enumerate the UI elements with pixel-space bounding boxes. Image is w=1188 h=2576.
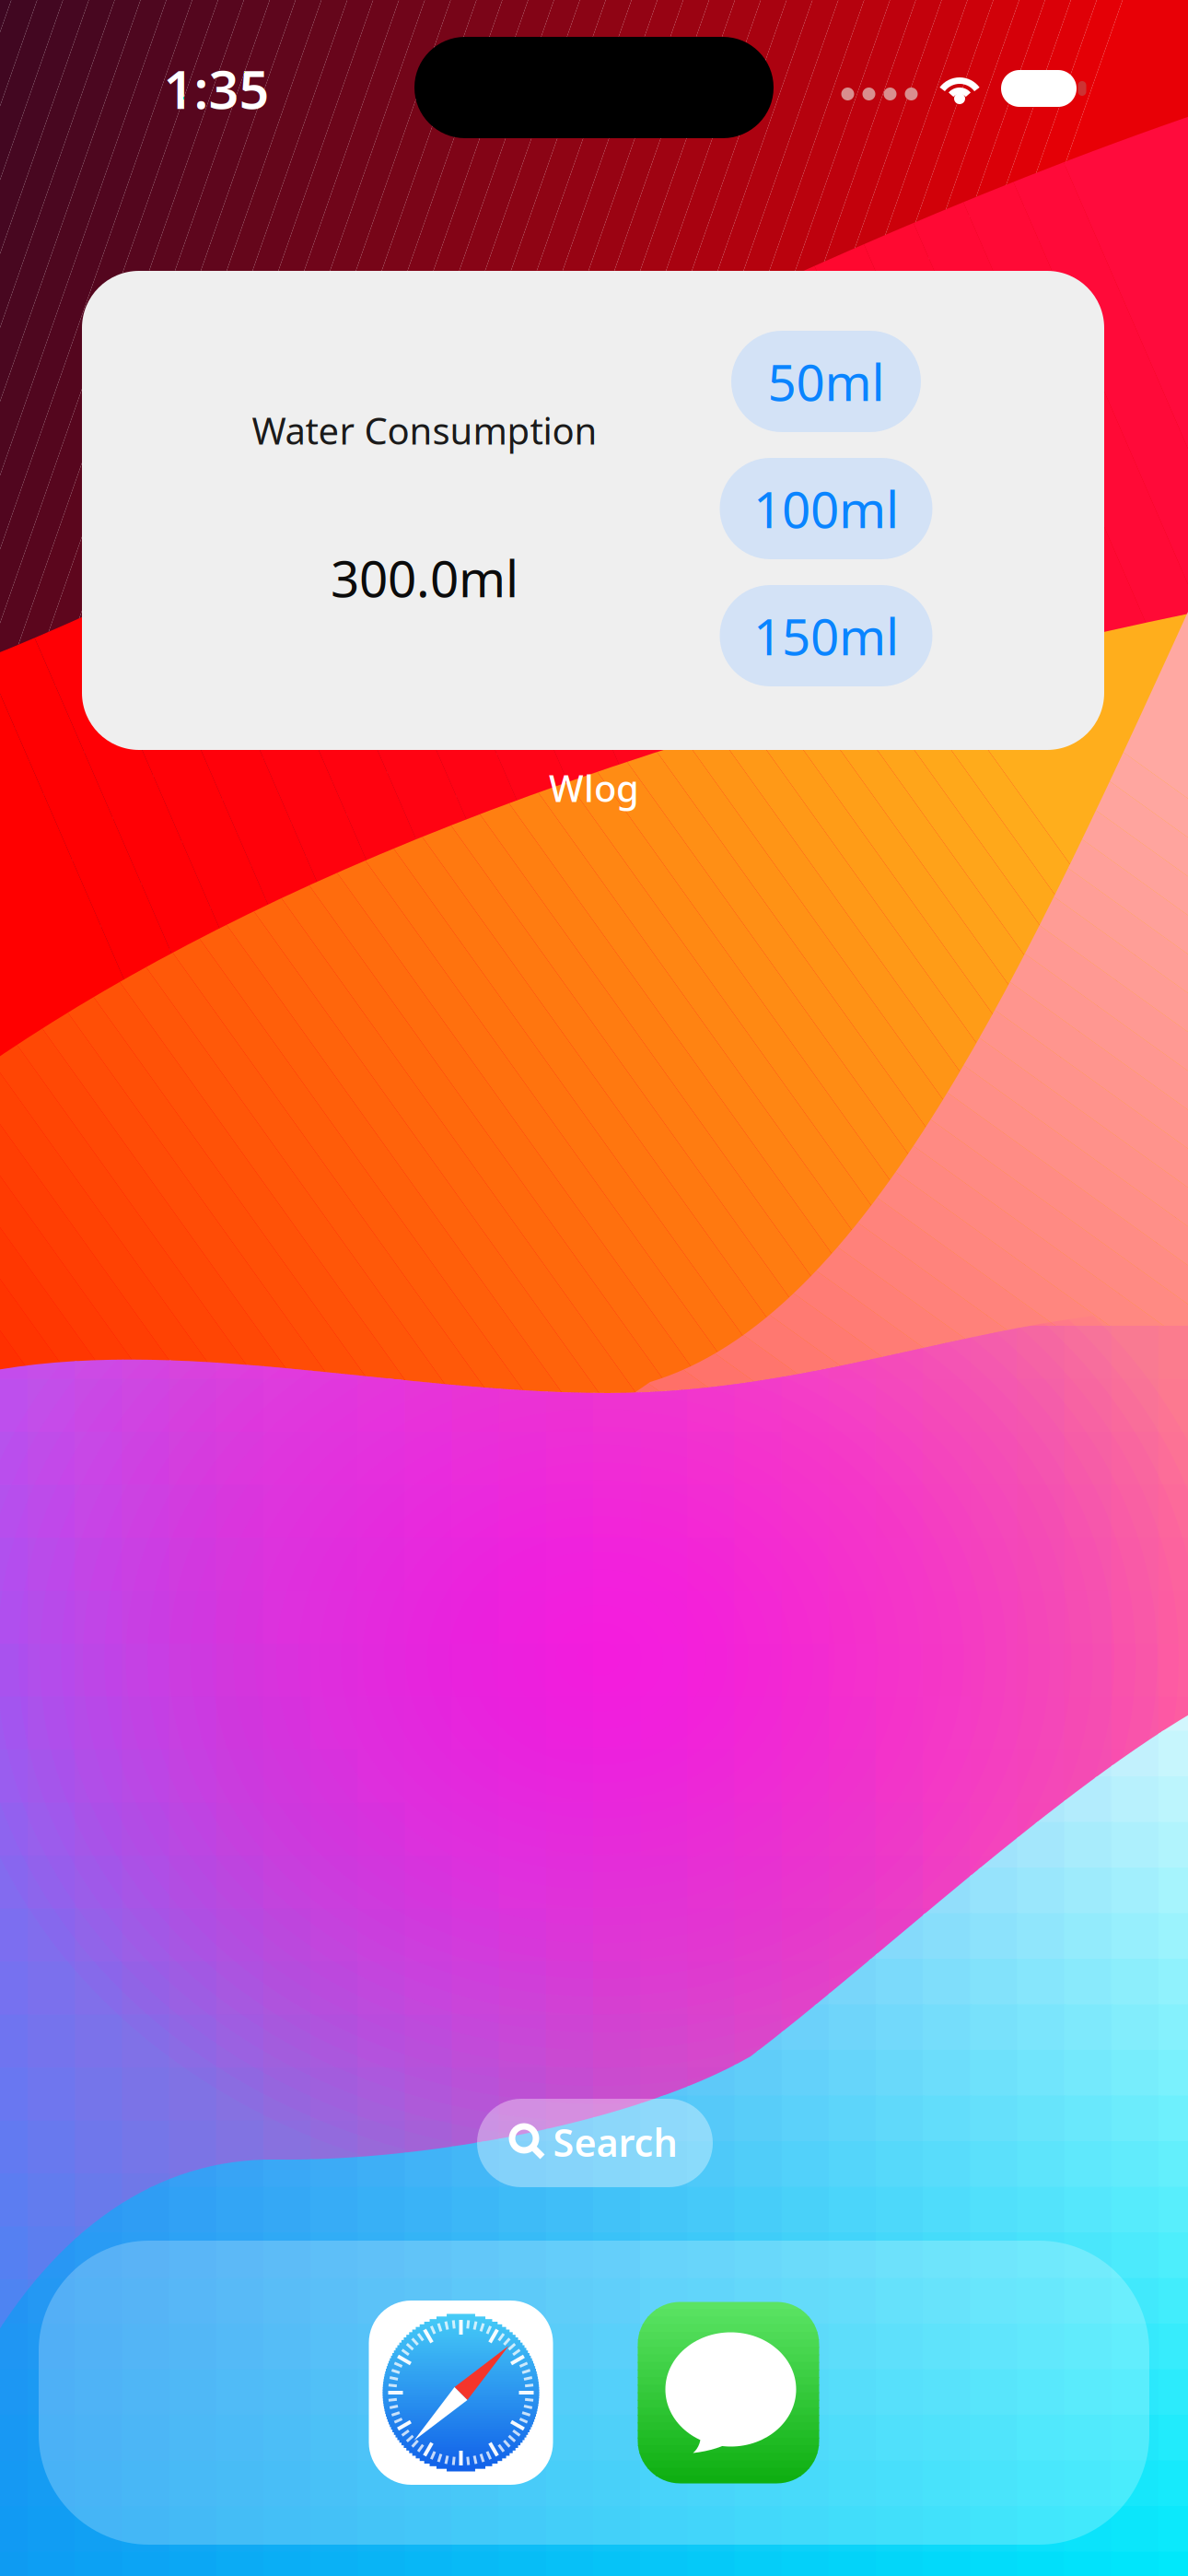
staticText: Search bbox=[553, 2117, 677, 2167]
staticText: 50ml bbox=[768, 348, 885, 415]
staticText: Wlog bbox=[549, 763, 639, 812]
staticText: 300.0ml bbox=[331, 544, 518, 611]
button[interactable]: 100ml bbox=[720, 458, 932, 559]
staticText: 100ml bbox=[753, 475, 899, 542]
button[interactable]: 150ml bbox=[720, 585, 932, 686]
staticText: Water Consumption bbox=[252, 406, 597, 455]
staticText: 150ml bbox=[753, 602, 899, 669]
button[interactable]: 50ml bbox=[731, 331, 921, 432]
button[interactable]: Search bbox=[477, 2099, 713, 2187]
button[interactable]: Safari bbox=[369, 2301, 553, 2485]
staticText: 1:35 bbox=[163, 53, 269, 123]
button[interactable]: Messages bbox=[638, 2302, 819, 2483]
